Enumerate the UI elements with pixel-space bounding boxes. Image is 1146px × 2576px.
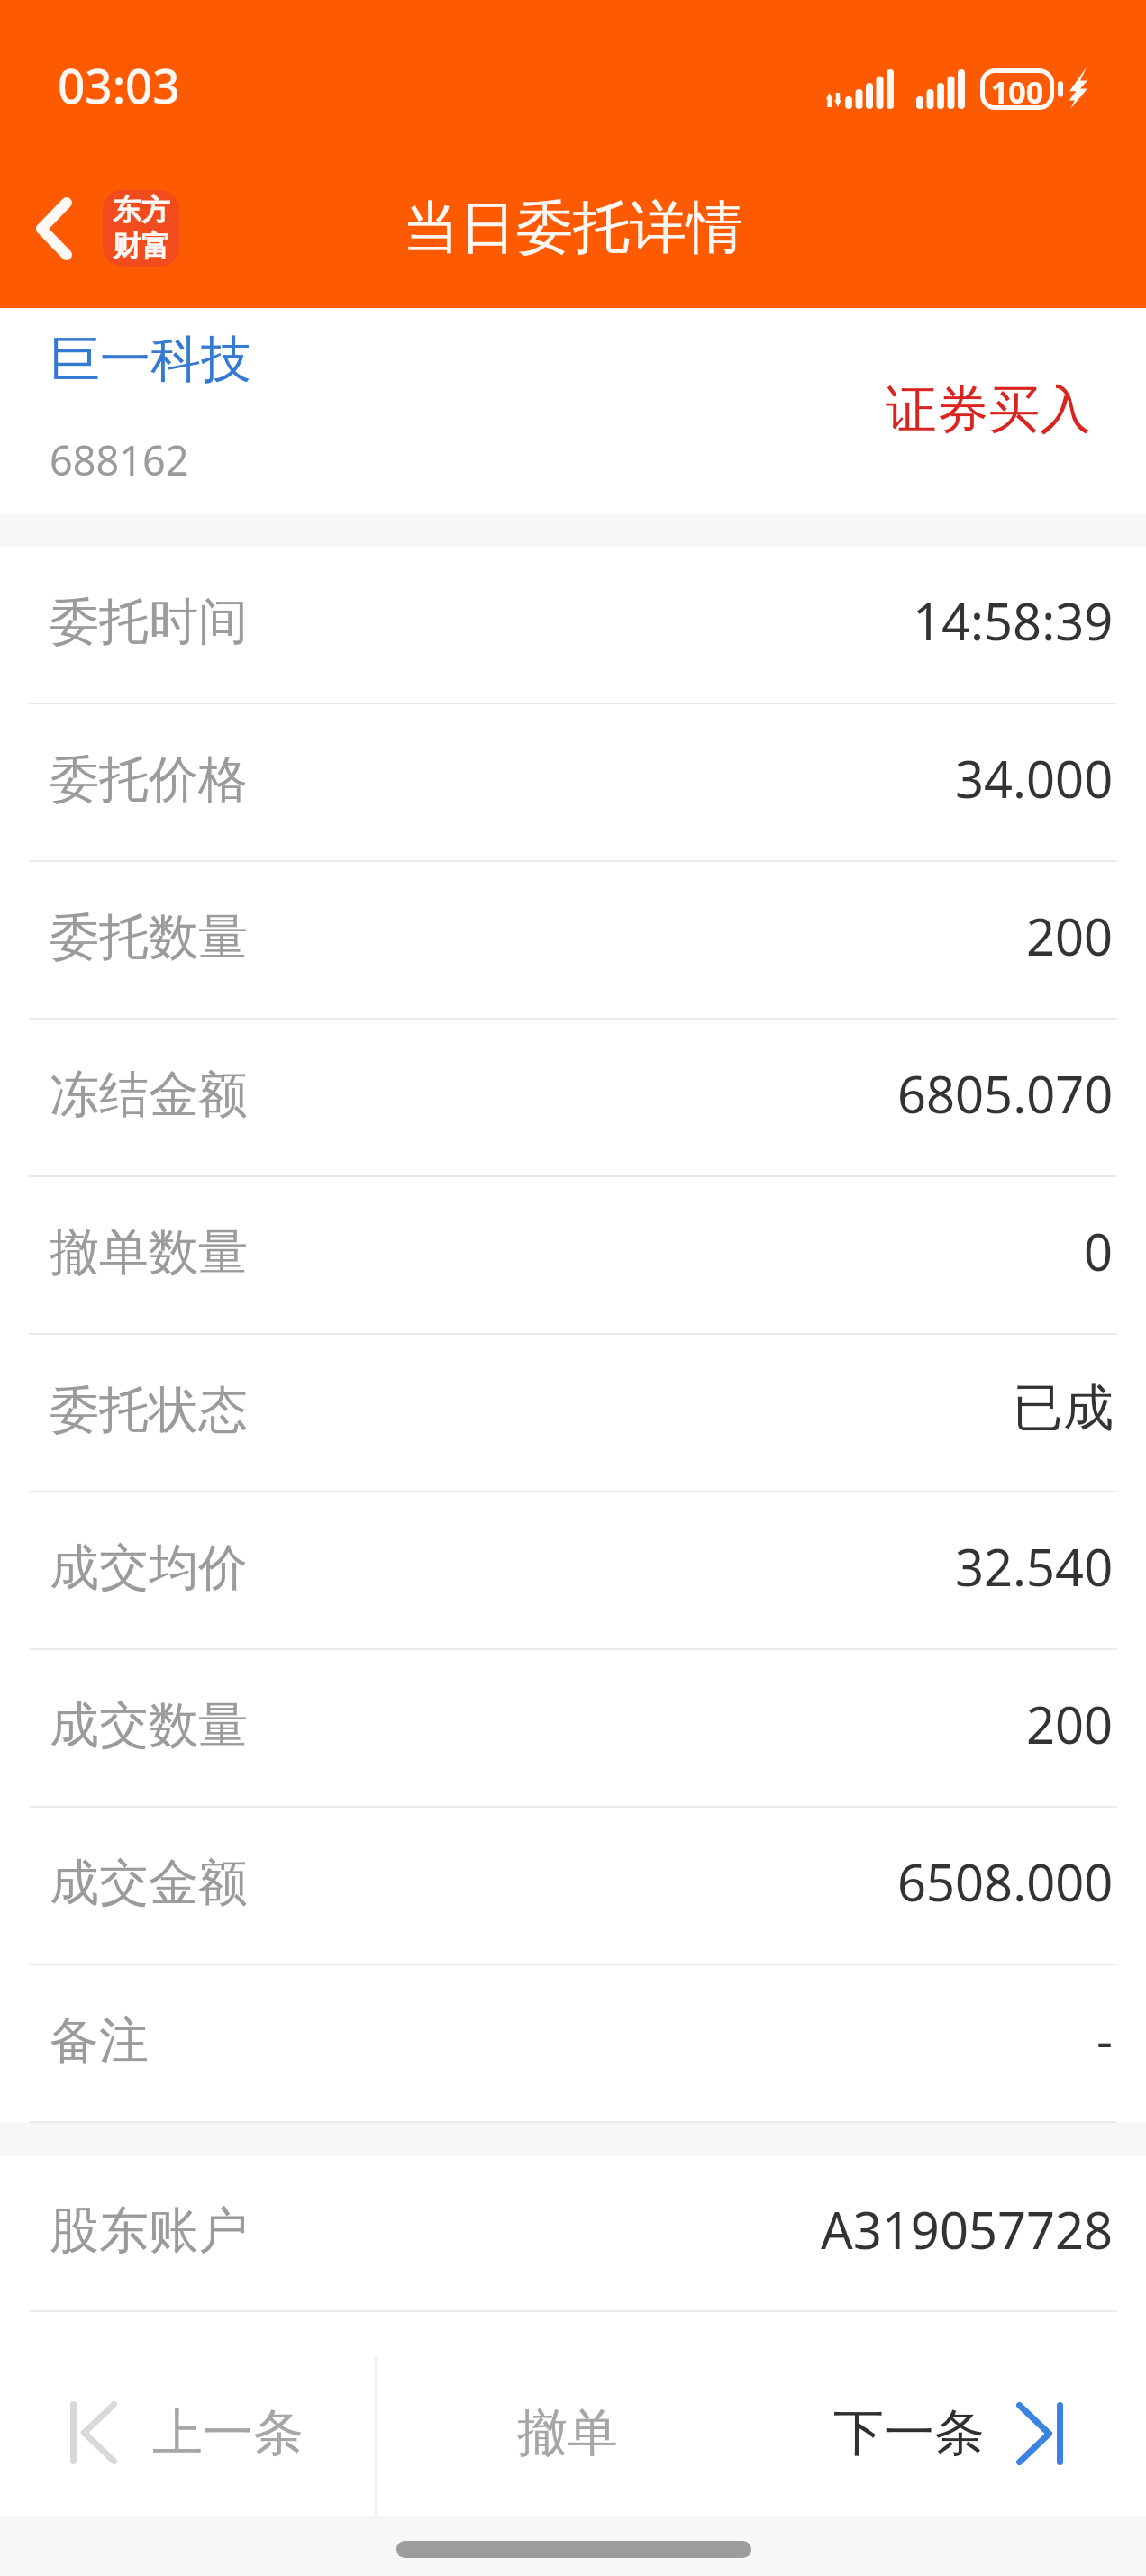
staticText: 上一条 (152, 2401, 304, 2465)
staticText: 34.000 (955, 744, 1114, 812)
staticText: 0 (1084, 1217, 1114, 1285)
staticText: 32.540 (955, 1532, 1114, 1601)
staticText: 当日委托详情 (0, 192, 1146, 263)
staticText: 东方 (113, 192, 170, 228)
staticText: 委托状态 (50, 1379, 248, 1441)
button[interactable]: 成交金额 (0, 1808, 1146, 1965)
staticText: 6805.070 (897, 1059, 1114, 1128)
button[interactable]: 股东账户 (0, 2156, 1146, 2312)
staticText: - (1096, 2005, 1114, 2073)
button[interactable]: 委托状态 (0, 1335, 1146, 1492)
button[interactable]: 撤单 (378, 2312, 757, 2516)
button[interactable]: East Money home (103, 190, 179, 267)
staticText: 100 (980, 71, 1054, 113)
button[interactable]: 成交数量 (0, 1650, 1146, 1808)
button[interactable]: 备注 (0, 1965, 1146, 2123)
staticText: 14:58:39 (913, 586, 1114, 655)
staticText: 688162 (50, 432, 189, 487)
staticText: 已成 (1013, 1376, 1114, 1440)
staticText: 6508.000 (897, 1847, 1114, 1916)
staticText: 下一条 (833, 2401, 985, 2465)
button[interactable]: 撤单数量 (0, 1177, 1146, 1335)
staticText: 委托价格 (50, 748, 248, 811)
staticText: 03:03 (58, 52, 180, 117)
staticText: 备注 (50, 2009, 149, 2072)
staticText: 200 (1026, 902, 1114, 970)
staticText: 冻结金额 (50, 1064, 248, 1126)
button[interactable]: 冻结金额 (0, 1020, 1146, 1177)
staticText: 巨一科技 (50, 328, 251, 392)
staticText: 成交金额 (50, 1852, 248, 1914)
button[interactable]: Back (9, 175, 99, 283)
staticText: 200 (1026, 1690, 1114, 1758)
button[interactable]: 委托时间 (0, 547, 1146, 704)
staticText: 股东账户 (50, 2200, 248, 2262)
staticText: 委托时间 (50, 591, 248, 653)
staticText: 撤单 (517, 2401, 618, 2465)
staticText: 成交均价 (50, 1537, 248, 1599)
staticText: 委托数量 (50, 906, 248, 968)
button[interactable]: 委托价格 (0, 704, 1146, 862)
staticText: 证券买入 (0, 377, 1091, 442)
button[interactable]: 下一条 (757, 2312, 1146, 2516)
staticText: A319057728 (821, 2195, 1114, 2263)
staticText: 财富 (113, 228, 170, 264)
button[interactable]: 委托数量 (0, 862, 1146, 1020)
button[interactable]: 成交均价 (0, 1492, 1146, 1650)
staticText: 成交数量 (50, 1694, 248, 1756)
button[interactable]: 上一条 (0, 2312, 376, 2516)
staticText: 撤单数量 (50, 1221, 248, 1283)
